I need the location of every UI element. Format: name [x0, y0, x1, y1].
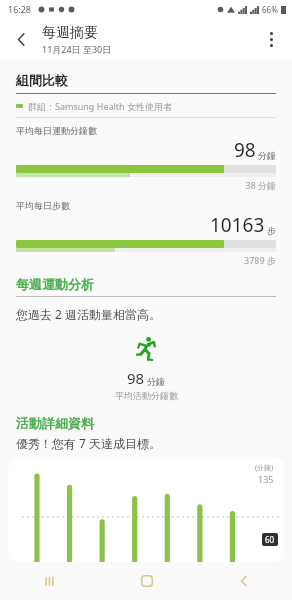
- staticText: 步: [267, 225, 276, 236]
- staticText: 群組：Samsung Health 女性使用者: [28, 100, 172, 112]
- staticText: 分鐘: [258, 150, 276, 161]
- staticText: 組間比較: [16, 72, 68, 88]
- staticText: 平均每日運動分鐘數: [16, 125, 97, 136]
- staticText: 135: [258, 473, 274, 485]
- staticText: 98: [234, 137, 256, 163]
- button[interactable]: 平均每日運動分鐘數: [16, 125, 276, 191]
- staticText: 平均活動分鐘數: [115, 390, 178, 401]
- staticText: 38 分鐘: [16, 179, 276, 191]
- staticText: 平均每日步數: [16, 200, 70, 211]
- staticText: 優秀！您有 7 天達成目標。: [16, 435, 162, 451]
- button[interactable]: 平均每日步數: [16, 200, 276, 266]
- button[interactable]: More options: [254, 22, 288, 56]
- button[interactable]: Back: [4, 22, 38, 56]
- staticText: 活動詳細資料: [16, 415, 94, 431]
- staticText: 分鐘: [147, 376, 165, 387]
- button[interactable]: Home: [98, 562, 195, 600]
- staticText: 每週運動分析: [16, 276, 94, 292]
- staticText: 60: [265, 534, 275, 545]
- staticText: 66%: [262, 4, 278, 15]
- staticText: 您過去 2 週活動量相當高。: [16, 306, 162, 322]
- staticText: 10163: [210, 212, 265, 238]
- staticText: 11月24日 至30日: [42, 43, 112, 55]
- staticText: 每週摘要: [42, 24, 98, 42]
- staticText: 98: [127, 368, 145, 388]
- button[interactable]: Recents: [0, 562, 98, 600]
- staticText: (分鐘): [255, 463, 274, 473]
- button[interactable]: Back: [195, 562, 292, 600]
- button[interactable]: (分鐘): [8, 457, 284, 562]
- staticText: 16:28: [8, 3, 32, 15]
- staticText: 3789 步: [16, 254, 276, 266]
